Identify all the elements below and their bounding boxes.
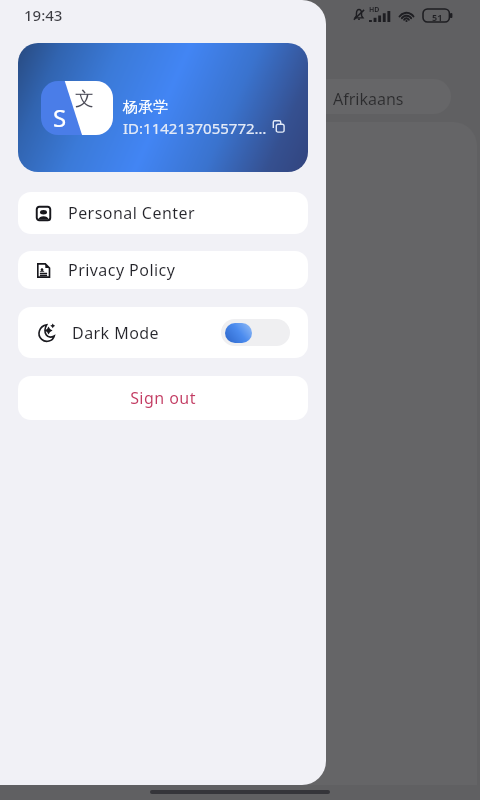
staticText: 文 xyxy=(75,87,94,111)
button[interactable]: Copy ID xyxy=(272,120,285,133)
staticText: Dark Mode xyxy=(72,322,160,344)
staticText: HD xyxy=(369,5,380,15)
button[interactable]: Personal Center xyxy=(18,192,308,234)
button[interactable]: Dark Mode xyxy=(18,307,308,358)
staticText: Sign out xyxy=(130,387,196,409)
staticText: Privacy Policy xyxy=(68,259,176,281)
staticText: ID:1142137055772… xyxy=(123,118,267,138)
staticText: Personal Center xyxy=(68,202,195,224)
staticText: Afrikaans xyxy=(333,88,404,110)
button[interactable]: Sign out xyxy=(18,376,308,420)
staticText: 51 xyxy=(432,11,443,23)
button[interactable]: S xyxy=(18,43,308,172)
button[interactable]: Dark mode toggle xyxy=(221,319,290,346)
staticText: 19:43 xyxy=(24,5,63,25)
staticText: S xyxy=(53,101,67,134)
staticText: 杨承学 xyxy=(123,98,168,117)
button[interactable]: Privacy Policy xyxy=(18,251,308,289)
